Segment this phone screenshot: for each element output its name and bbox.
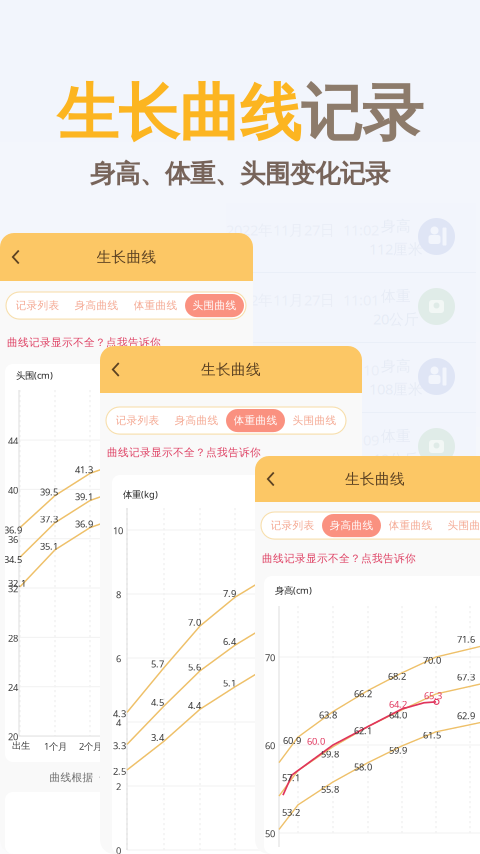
staticText: 67.3 bbox=[457, 671, 475, 683]
staticText: 2022年11月27日 11:01 bbox=[226, 290, 379, 309]
button[interactable]: 曲线记录显示不全？点我告诉你 bbox=[7, 336, 161, 349]
staticText: 记录 bbox=[301, 76, 423, 151]
button[interactable]: 身高曲线 bbox=[167, 409, 226, 432]
staticText: 71.6 bbox=[457, 633, 475, 645]
staticText: 曲线根据《世界卫生组织》标准 bbox=[49, 771, 203, 784]
staticText: 60.9 bbox=[283, 734, 301, 746]
button[interactable]: 曲线记录显示不全？点我告诉你 bbox=[107, 446, 261, 459]
staticText: 108厘米 bbox=[369, 379, 423, 398]
staticText: 39.5 bbox=[40, 486, 58, 498]
staticText: 3.3 bbox=[113, 739, 126, 752]
staticText: 身高曲线 bbox=[174, 414, 218, 427]
staticText: 出生 bbox=[12, 740, 30, 751]
button[interactable]: 返回 bbox=[100, 354, 120, 385]
staticText: 62.9 bbox=[457, 709, 475, 722]
staticText: 37.3 bbox=[40, 513, 58, 525]
staticText: 4.5 bbox=[151, 696, 164, 708]
staticText: 头围曲线 bbox=[292, 414, 336, 427]
staticText: 体重 bbox=[381, 427, 411, 445]
staticText: 身高 bbox=[381, 357, 411, 375]
staticText: 39.1 bbox=[75, 490, 93, 503]
staticText: 50 bbox=[265, 827, 275, 840]
staticText: 2022年11月26日 18:09 bbox=[226, 430, 379, 449]
button[interactable]: 头围曲线 bbox=[440, 514, 480, 537]
staticText: 62.1 bbox=[354, 724, 372, 737]
staticText: 40 bbox=[8, 484, 18, 496]
staticText: 2.5 bbox=[113, 765, 126, 777]
staticText: 44 bbox=[8, 435, 18, 447]
staticText: 5.1 bbox=[223, 677, 236, 689]
staticText: 0 bbox=[116, 844, 121, 854]
staticText: 体重曲线 bbox=[133, 299, 177, 312]
button[interactable]: 头围曲线 bbox=[285, 409, 344, 432]
button[interactable]: 体重曲线 bbox=[126, 294, 185, 317]
button[interactable]: 身高曲线 bbox=[322, 514, 381, 537]
button[interactable]: 返回 bbox=[255, 463, 275, 494]
staticText: 36.9 bbox=[75, 518, 93, 530]
staticText: 1个月 bbox=[44, 740, 67, 752]
button[interactable]: 曲线记录显示不全？点我告诉你 bbox=[262, 552, 416, 565]
button[interactable]: 记录列表 bbox=[8, 294, 67, 317]
staticText: 70.0 bbox=[423, 654, 441, 666]
button[interactable]: 体重曲线 bbox=[381, 514, 440, 537]
button[interactable]: 体重曲线 bbox=[226, 409, 285, 432]
staticText: 生长曲线 bbox=[201, 360, 261, 378]
staticText: 记录列表 bbox=[15, 299, 59, 312]
staticText: 66.2 bbox=[354, 687, 372, 700]
staticText: 曲线记录显示不全？点我告诉你 bbox=[262, 552, 416, 565]
staticText: 41.3 bbox=[75, 463, 93, 476]
staticText: 24 bbox=[8, 681, 18, 694]
staticText: 身高 bbox=[381, 217, 411, 235]
staticText: 28 bbox=[8, 632, 18, 644]
staticText: 身高曲线 bbox=[329, 519, 373, 532]
staticText: 57.1 bbox=[282, 771, 300, 784]
staticText: 68.2 bbox=[388, 670, 406, 682]
staticText: 头围曲线 bbox=[447, 519, 480, 532]
staticText: 3.4 bbox=[151, 731, 164, 744]
staticText: 36 bbox=[8, 533, 18, 546]
staticText: 身高(cm) bbox=[275, 584, 312, 596]
staticText: 59.8 bbox=[321, 748, 339, 760]
staticText: 头围(cm) bbox=[16, 369, 53, 381]
button[interactable]: 记录列表 bbox=[263, 514, 322, 537]
staticText: 6.4 bbox=[223, 635, 236, 648]
button[interactable]: 返回 bbox=[0, 241, 20, 272]
staticText: 19公斤 bbox=[373, 449, 419, 468]
staticText: 8 bbox=[116, 588, 121, 601]
staticText: 53.2 bbox=[282, 806, 300, 818]
staticText: 身高、体重、头围变化记录 bbox=[90, 158, 390, 189]
staticText: 身高曲线 bbox=[74, 299, 118, 312]
staticText: 记录列表 bbox=[115, 414, 159, 427]
staticText: 头围曲线 bbox=[192, 299, 236, 312]
staticText: 10 bbox=[113, 524, 123, 537]
staticText: 58.0 bbox=[354, 761, 372, 773]
staticText: 32 bbox=[8, 582, 18, 595]
staticText: 70 bbox=[265, 651, 275, 664]
staticText: 64.0 bbox=[389, 709, 407, 721]
staticText: 生长曲线 bbox=[57, 76, 301, 151]
staticText: 体重 bbox=[381, 287, 411, 305]
staticText: 60.0 bbox=[307, 735, 325, 747]
staticText: 记录列表 bbox=[270, 519, 314, 532]
staticText: 5.7 bbox=[151, 658, 164, 670]
staticText: 63.8 bbox=[319, 709, 337, 721]
staticText: 曲线记录显示不全？点我告诉你 bbox=[7, 336, 161, 349]
button[interactable]: 头围曲线 bbox=[185, 294, 244, 317]
button[interactable]: 记录列表 bbox=[108, 409, 167, 432]
staticText: 65.3 bbox=[424, 689, 442, 702]
staticText: 4.3 bbox=[113, 707, 126, 720]
staticText: 7.9 bbox=[223, 587, 236, 600]
staticText: 112厘米 bbox=[369, 239, 423, 258]
staticText: 体重曲线 bbox=[388, 519, 432, 532]
staticText: 4.4 bbox=[188, 699, 201, 712]
staticText: 曲线记录显示不全？点我告诉你 bbox=[107, 446, 261, 459]
staticText: 2个月 bbox=[79, 740, 102, 752]
staticText: 64.2 bbox=[389, 698, 407, 710]
button[interactable]: 身高曲线 bbox=[67, 294, 126, 317]
staticText: 32.1 bbox=[8, 577, 26, 589]
staticText: 55.8 bbox=[321, 783, 339, 795]
staticText: 20公斤 bbox=[373, 309, 419, 328]
staticText: 35.1 bbox=[40, 540, 58, 552]
staticText: 36.9 bbox=[4, 524, 22, 536]
staticText: 6 bbox=[116, 652, 121, 665]
